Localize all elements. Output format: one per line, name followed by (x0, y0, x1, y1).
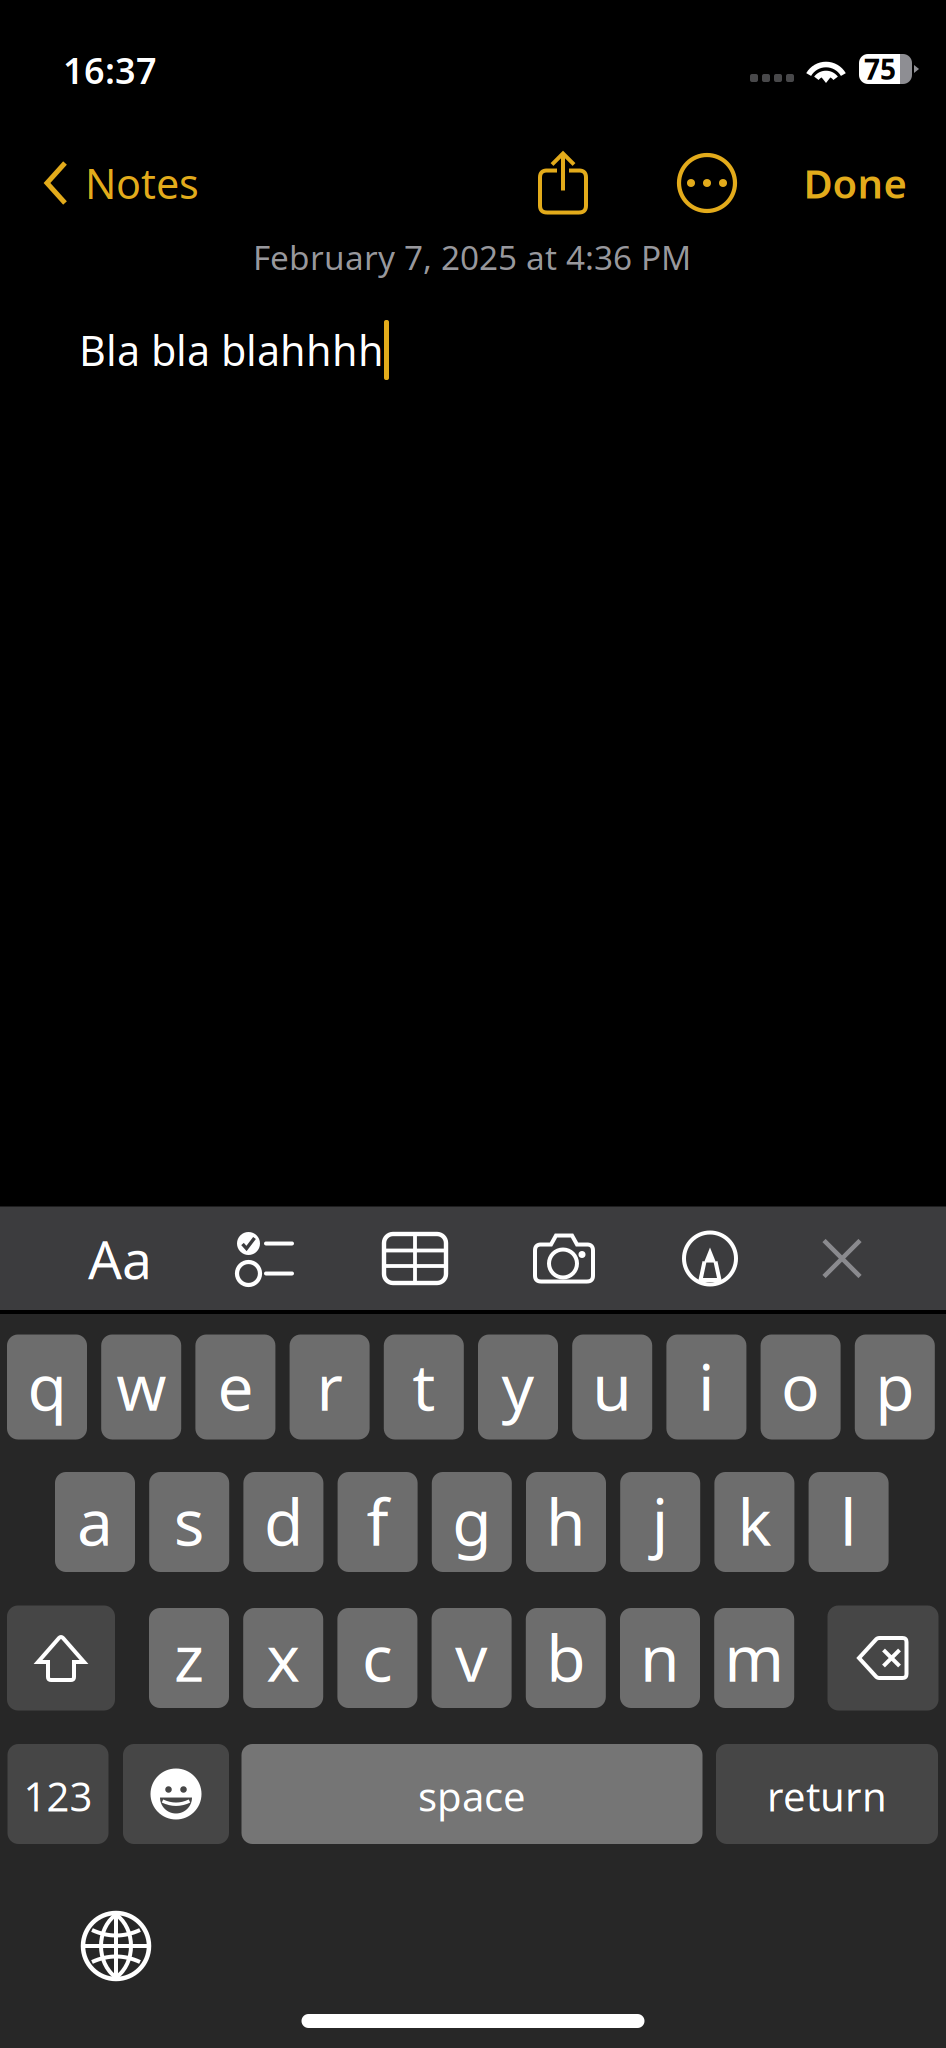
button[interactable]: s (149, 1472, 229, 1572)
staticText: Notes (85, 156, 199, 210)
staticText: 75 (864, 50, 896, 88)
staticText: q (27, 1343, 66, 1428)
staticText: k (737, 1478, 771, 1563)
staticText: n (640, 1614, 680, 1699)
staticText: b (546, 1614, 585, 1699)
staticText: f (367, 1478, 389, 1563)
staticText: February 7, 2025 at 4:36 PM (253, 235, 691, 279)
staticText: Done (803, 156, 906, 209)
button[interactable]: b (526, 1608, 606, 1708)
button[interactable]: Table (372, 1222, 458, 1295)
button[interactable]: Share (527, 141, 599, 224)
button[interactable]: More (668, 144, 746, 222)
staticText: Bla bla blahhhh (79, 323, 384, 377)
staticText: x (266, 1614, 300, 1699)
button[interactable]: z (149, 1608, 229, 1708)
button[interactable]: c (337, 1608, 417, 1708)
button[interactable]: g (432, 1472, 512, 1572)
button[interactable]: Notes (37, 148, 205, 218)
button[interactable]: Delete (827, 1605, 938, 1710)
staticText: p (875, 1343, 914, 1428)
button[interactable]: h (526, 1472, 606, 1572)
button[interactable]: Next keyboard (67, 1897, 165, 1995)
staticText: t (412, 1343, 435, 1428)
button[interactable]: k (714, 1472, 794, 1572)
staticText: h (546, 1478, 586, 1563)
button[interactable]: l (809, 1472, 889, 1572)
button[interactable]: Hide keyboard (809, 1225, 875, 1291)
button[interactable]: p (855, 1334, 935, 1439)
button[interactable]: o (761, 1334, 841, 1439)
button[interactable]: Emoji (123, 1744, 229, 1844)
button[interactable]: r (290, 1334, 370, 1439)
staticText: y (501, 1343, 534, 1428)
button[interactable]: f (338, 1472, 418, 1572)
button[interactable]: Done (793, 148, 916, 217)
staticText: m (724, 1614, 784, 1699)
button[interactable]: j (620, 1472, 700, 1572)
staticText: Aa (88, 1223, 152, 1294)
button[interactable]: x (243, 1608, 323, 1708)
staticText: i (698, 1343, 715, 1428)
staticText: z (174, 1614, 204, 1699)
button[interactable]: i (666, 1334, 746, 1439)
button[interactable]: d (243, 1472, 323, 1572)
staticText: space (418, 1769, 526, 1822)
staticText: e (217, 1343, 253, 1428)
button[interactable]: 123 (7, 1744, 108, 1844)
staticText: d (264, 1478, 303, 1563)
button[interactable]: y (478, 1334, 558, 1439)
staticText: r (317, 1343, 343, 1428)
staticText: o (781, 1343, 820, 1428)
staticText: v (455, 1614, 488, 1699)
staticText: g (452, 1478, 491, 1563)
button[interactable]: return (716, 1744, 938, 1844)
button[interactable]: n (620, 1608, 700, 1708)
staticText: 123 (23, 1769, 92, 1822)
button[interactable]: m (714, 1608, 794, 1708)
button[interactable]: Checklist (225, 1220, 307, 1297)
staticText: 16:37 (63, 46, 157, 94)
button[interactable]: q (7, 1334, 87, 1439)
button[interactable]: u (572, 1334, 652, 1439)
staticText: u (592, 1343, 632, 1428)
staticText: s (174, 1478, 205, 1563)
staticText: c (362, 1614, 393, 1699)
staticText: a (77, 1478, 113, 1563)
button[interactable]: Shift (7, 1605, 115, 1710)
staticText: return (767, 1769, 887, 1822)
button[interactable]: Camera (521, 1221, 607, 1295)
button[interactable]: w (101, 1334, 181, 1439)
staticText: l (840, 1478, 857, 1563)
staticText: w (116, 1343, 166, 1428)
staticText: j (652, 1478, 669, 1563)
button[interactable]: a (55, 1472, 135, 1572)
button[interactable]: t (384, 1334, 464, 1439)
button[interactable]: e (195, 1334, 275, 1439)
button[interactable]: v (432, 1608, 512, 1708)
button[interactable]: Text format (76, 1211, 164, 1306)
button[interactable]: space (241, 1744, 702, 1844)
button[interactable]: Markup (672, 1220, 748, 1296)
